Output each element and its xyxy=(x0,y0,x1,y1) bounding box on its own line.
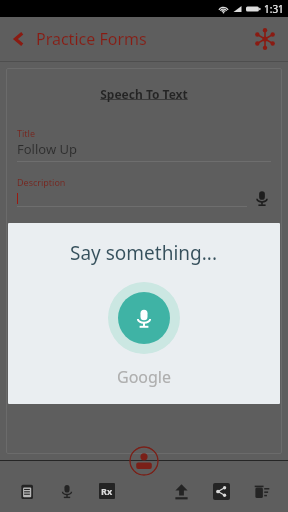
other: Back xyxy=(10,30,28,48)
button[interactable]: Listening microphone xyxy=(108,282,180,354)
staticText: Title xyxy=(17,127,35,139)
button[interactable]: Forms xyxy=(14,478,40,504)
staticText: 1:31 xyxy=(264,2,284,16)
staticText: Say something... xyxy=(70,240,218,266)
staticText: Rx xyxy=(101,485,113,497)
button[interactable]: Upload xyxy=(168,478,194,504)
button[interactable]: Patient xyxy=(129,446,159,476)
button[interactable]: Back xyxy=(10,28,147,50)
staticText: Follow Up xyxy=(17,140,78,158)
staticText: Google xyxy=(117,366,172,388)
staticText: Speech To Text xyxy=(17,86,271,102)
button[interactable]: Voice input xyxy=(253,189,271,207)
button[interactable]: Share xyxy=(208,478,234,504)
button[interactable]: Prescriptions xyxy=(94,478,120,504)
staticText: Practice Forms xyxy=(36,28,147,50)
staticText: Description xyxy=(17,176,66,188)
button[interactable]: Dictate xyxy=(54,478,80,504)
button[interactable]: Network hub xyxy=(252,26,278,52)
button[interactable]: Delete xyxy=(248,478,274,504)
